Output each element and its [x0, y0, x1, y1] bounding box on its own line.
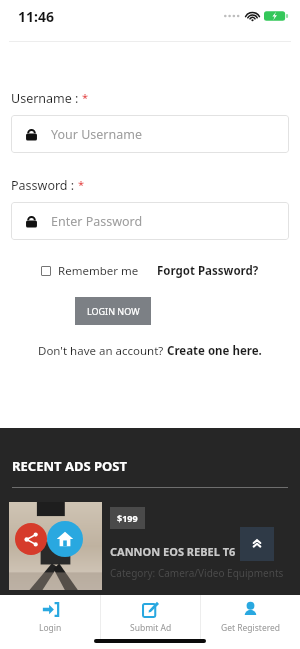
- staticText: *: [82, 90, 89, 105]
- staticText: Get Registered: [221, 622, 281, 634]
- button[interactable]: Submit Ad: [101, 595, 200, 639]
- button[interactable]: Your Username: [11, 115, 289, 153]
- staticText: Submit Ad: [130, 622, 172, 634]
- staticText: Login: [39, 622, 62, 634]
- button[interactable]: Home: [47, 521, 83, 557]
- button[interactable]: Forgot Password?: [157, 263, 259, 279]
- staticText: $199: [117, 512, 138, 524]
- button[interactable]: Login: [0, 595, 100, 639]
- staticText: LOGIN NOW: [87, 305, 140, 317]
- staticText: *: [78, 177, 85, 192]
- button[interactable]: Enter Password: [11, 202, 289, 240]
- button[interactable]: Scroll to top: [240, 527, 274, 561]
- button[interactable]: LOGIN NOW: [75, 297, 151, 325]
- staticText: Category: Camera/Video Equipments: [110, 566, 284, 580]
- staticText: 11:46: [18, 7, 54, 26]
- staticText: Username :: [11, 90, 82, 107]
- staticText: Enter Password: [51, 213, 143, 230]
- button[interactable]: Get Registered: [201, 595, 300, 639]
- staticText: CANNON EOS REBEL T6: [110, 544, 236, 559]
- button[interactable]: Remember me: [41, 263, 139, 279]
- staticText: RECENT ADS POST: [12, 457, 127, 475]
- staticText: Don't have an account?: [38, 343, 167, 359]
- staticText: Password :: [11, 177, 78, 194]
- staticText: Your Username: [51, 126, 142, 143]
- button[interactable]: Create one here.: [167, 343, 262, 359]
- button[interactable]: Share: [15, 523, 47, 555]
- staticText: Remember me: [58, 263, 139, 279]
